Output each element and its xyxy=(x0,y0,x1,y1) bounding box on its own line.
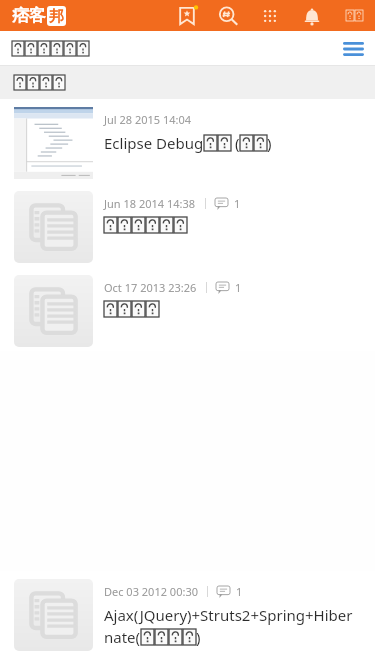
staticText: Eclipse Debug xyxy=(104,133,204,153)
button[interactable]: Oct 17 2013 23:26 xyxy=(0,267,375,351)
staticText: 1 xyxy=(236,584,243,599)
button[interactable]: Bookmarks xyxy=(166,0,207,31)
staticText: 1 xyxy=(234,196,241,211)
staticText: Jul 28 2015 14:04 xyxy=(104,112,192,127)
button[interactable]: Menu xyxy=(331,31,375,66)
button[interactable]: Jun 18 2014 14:38 xyxy=(0,183,375,267)
staticText: 邦 xyxy=(49,7,64,26)
staticText: nate( xyxy=(104,627,141,647)
button[interactable]: Notifications xyxy=(291,0,333,31)
button[interactable]: PIXNET home xyxy=(0,0,166,31)
staticText: ) xyxy=(196,627,201,647)
button[interactable]: Search xyxy=(207,0,249,31)
button[interactable]: Apps xyxy=(249,0,291,31)
button[interactable]: Jul 28 2015 14:04 xyxy=(0,99,375,183)
staticText: 痞客 xyxy=(12,5,46,26)
button[interactable]: More xyxy=(333,0,375,31)
staticText: 1 xyxy=(235,280,242,295)
staticText: Oct 17 2013 23:26 xyxy=(104,280,197,295)
staticText: Dec 03 2012 00:30 xyxy=(104,584,198,599)
staticText: ( xyxy=(231,133,240,153)
staticText: ) xyxy=(267,133,272,153)
staticText: Ajax(JQuery)+Struts2+Spring+Hiber xyxy=(104,605,353,625)
staticText: Jun 18 2014 14:38 xyxy=(104,196,196,211)
button[interactable] xyxy=(12,41,89,56)
button[interactable]: Dec 03 2012 00:30 xyxy=(0,571,375,667)
button[interactable] xyxy=(0,66,375,99)
